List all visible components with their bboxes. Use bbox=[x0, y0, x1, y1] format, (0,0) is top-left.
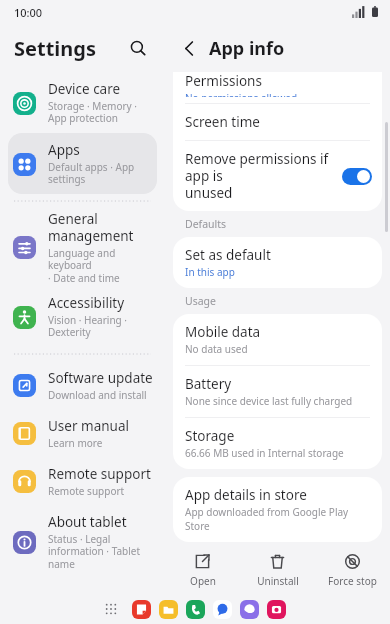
button[interactable]: Back bbox=[175, 34, 203, 62]
staticText: Apps bbox=[48, 141, 80, 159]
staticText: Remote support bbox=[48, 465, 151, 483]
staticText: Storage bbox=[185, 427, 235, 445]
button[interactable]: App details in store bbox=[173, 477, 382, 542]
staticText: Learn more bbox=[48, 436, 103, 450]
button[interactable]: Screen time bbox=[173, 104, 382, 140]
staticText: Device care bbox=[48, 80, 121, 98]
staticText: Permissions bbox=[185, 72, 262, 90]
staticText: None since device last fully charged bbox=[185, 394, 353, 408]
staticText: 10:00 bbox=[14, 5, 43, 20]
staticText: Remove permissions if app is unused bbox=[185, 150, 334, 202]
button[interactable]: Search bbox=[123, 33, 153, 63]
button[interactable]: messages bbox=[213, 600, 232, 619]
button[interactable]: Mobile data bbox=[173, 314, 382, 365]
button[interactable]: Set as default bbox=[173, 237, 382, 288]
staticText: Usage bbox=[185, 294, 216, 308]
button[interactable]: General management bbox=[8, 208, 157, 286]
staticText: Mobile data bbox=[185, 323, 261, 341]
staticText: Vision · Hearing · Dexterity bbox=[48, 313, 128, 339]
button[interactable]: Apps bbox=[8, 133, 157, 194]
staticText: App details in store bbox=[185, 486, 307, 504]
staticText: App downloaded from Google Play Store bbox=[185, 505, 370, 533]
button[interactable]: phone bbox=[186, 600, 205, 619]
staticText: Status · Legal information · Tablet name bbox=[48, 532, 140, 571]
button[interactable]: Remove permissions if app is unused bbox=[173, 141, 382, 211]
button[interactable]: Accessibility bbox=[8, 286, 157, 347]
staticText: Software update bbox=[48, 369, 153, 387]
staticText: General management bbox=[48, 210, 134, 245]
staticText: Remote support bbox=[48, 484, 125, 498]
staticText: Force stop bbox=[328, 574, 377, 588]
staticText: Set as default bbox=[185, 246, 271, 264]
button[interactable]: Uninstall bbox=[240, 546, 315, 594]
staticText: Language and keyboard · Date and time bbox=[48, 246, 157, 285]
staticText: User manual bbox=[48, 417, 129, 435]
staticText: Battery bbox=[185, 375, 232, 393]
staticText: 66.66 MB used in Internal storage bbox=[185, 446, 344, 460]
staticText: Download and install bbox=[48, 388, 147, 402]
staticText: Open bbox=[190, 574, 216, 588]
staticText: Screen time bbox=[185, 113, 260, 131]
staticText: About tablet bbox=[48, 513, 127, 531]
staticText: In this app bbox=[185, 265, 235, 279]
button[interactable]: About tablet bbox=[8, 505, 157, 579]
button[interactable]: camera bbox=[267, 600, 286, 619]
button[interactable]: Storage bbox=[173, 418, 382, 469]
button[interactable]: Open bbox=[165, 546, 240, 594]
button[interactable]: files bbox=[159, 600, 178, 619]
button[interactable]: Force stop bbox=[315, 546, 390, 594]
button[interactable]: All apps bbox=[101, 599, 121, 619]
staticText: No data used bbox=[185, 342, 248, 356]
staticText: Uninstall bbox=[257, 574, 299, 588]
button[interactable]: Software update bbox=[8, 361, 157, 409]
staticText: No permissions allowed bbox=[185, 91, 298, 97]
staticText: Defaults bbox=[185, 217, 227, 231]
button[interactable]: internet bbox=[240, 600, 259, 619]
button[interactable]: User manual bbox=[8, 409, 157, 457]
button[interactable]: Device care bbox=[8, 72, 157, 133]
button[interactable]: Battery bbox=[173, 366, 382, 417]
staticText: Storage · Memory · App protection bbox=[48, 99, 137, 125]
staticText: Accessibility bbox=[48, 294, 125, 312]
button[interactable]: Remote support bbox=[8, 457, 157, 505]
button[interactable]: notes bbox=[132, 600, 151, 619]
staticText: App info bbox=[209, 36, 285, 61]
staticText: Default apps · App settings bbox=[48, 160, 135, 186]
staticText: Settings bbox=[14, 35, 96, 62]
